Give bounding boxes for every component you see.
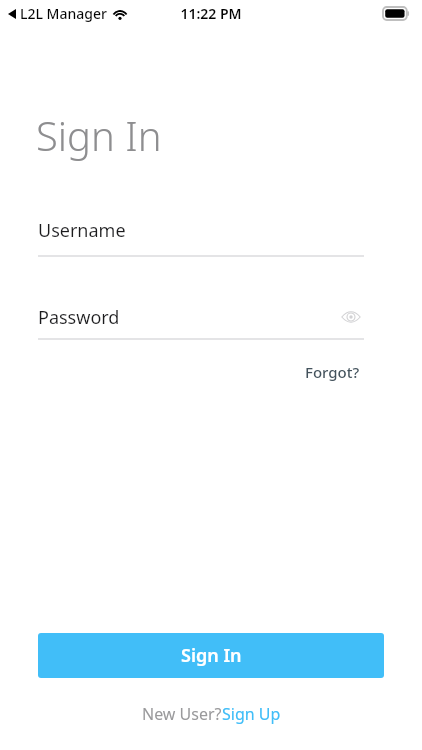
button[interactable]: Forgot? xyxy=(301,358,364,386)
staticText: Sign In xyxy=(36,108,162,162)
button[interactable]: Show password xyxy=(338,304,364,330)
staticText: Username xyxy=(38,218,126,243)
button[interactable]: Username xyxy=(38,218,364,257)
staticText: Sign In xyxy=(181,643,242,668)
staticText: Sign Up xyxy=(222,703,281,725)
button[interactable]: Sign In xyxy=(38,633,384,678)
staticText: 11:22 PM xyxy=(180,4,242,23)
button[interactable]: Back to L2L Manager xyxy=(8,4,128,23)
staticText: Forgot? xyxy=(305,362,360,382)
button[interactable]: Sign Up xyxy=(222,703,281,725)
staticText: New User? xyxy=(142,703,222,725)
staticText: L2L Manager xyxy=(20,4,107,23)
staticText: Password xyxy=(38,305,338,330)
